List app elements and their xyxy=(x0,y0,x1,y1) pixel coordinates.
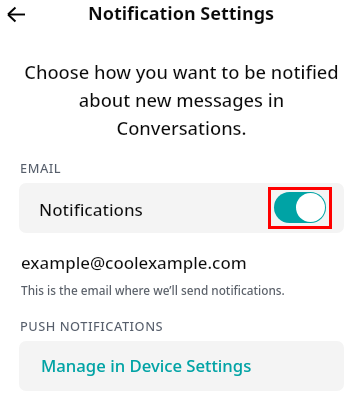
staticText: PUSH NOTIFICATIONS xyxy=(20,317,164,334)
staticText: Notification Settings xyxy=(88,1,275,26)
button[interactable]: Notifications xyxy=(19,183,344,233)
staticText: This is the email where we’ll send notif… xyxy=(21,282,285,298)
staticText: EMAIL xyxy=(20,159,62,176)
staticText: Notifications xyxy=(39,198,143,221)
staticText: Choose how you want to be notified about… xyxy=(19,59,344,140)
staticText: Manage in Device Settings xyxy=(41,354,252,377)
button[interactable]: Manage in Device Settings xyxy=(19,341,344,391)
staticText: example@coolexample.com xyxy=(21,251,247,274)
button[interactable]: Back xyxy=(2,0,30,28)
button[interactable]: Toggle email notifications xyxy=(268,186,331,228)
